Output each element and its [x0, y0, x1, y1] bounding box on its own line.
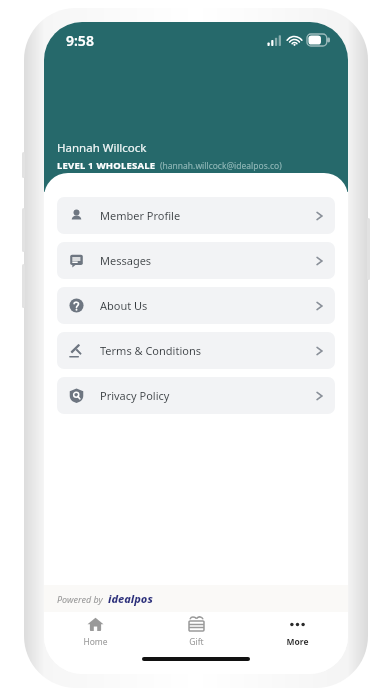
staticText: More [286, 636, 309, 648]
staticText: Hannah Willcock [57, 140, 147, 156]
button[interactable]: Member Profile [57, 197, 335, 234]
button[interactable]: Messages [57, 242, 335, 279]
button[interactable]: More [247, 612, 348, 652]
staticText: (hannah.willcock@idealpos.co) [160, 160, 282, 172]
button[interactable]: Home [44, 612, 146, 652]
staticText: Terms & Conditions [100, 343, 316, 358]
staticText: 9:58 [66, 31, 94, 50]
button[interactable]: Privacy Policy [57, 377, 335, 414]
staticText: LEVEL 1 WHOLESALE [57, 159, 156, 172]
button[interactable]: Gift [146, 612, 247, 652]
staticText: Member Profile [100, 208, 316, 223]
staticText: Powered by [57, 593, 103, 605]
button[interactable]: About Us [57, 287, 335, 324]
button[interactable]: Terms & Conditions [57, 332, 335, 369]
staticText: idealpos [108, 591, 153, 606]
staticText: Privacy Policy [100, 388, 316, 403]
staticText: Gift [189, 636, 204, 648]
staticText: Home [83, 636, 108, 648]
staticText: Messages [100, 253, 316, 268]
staticText: About Us [100, 298, 316, 313]
